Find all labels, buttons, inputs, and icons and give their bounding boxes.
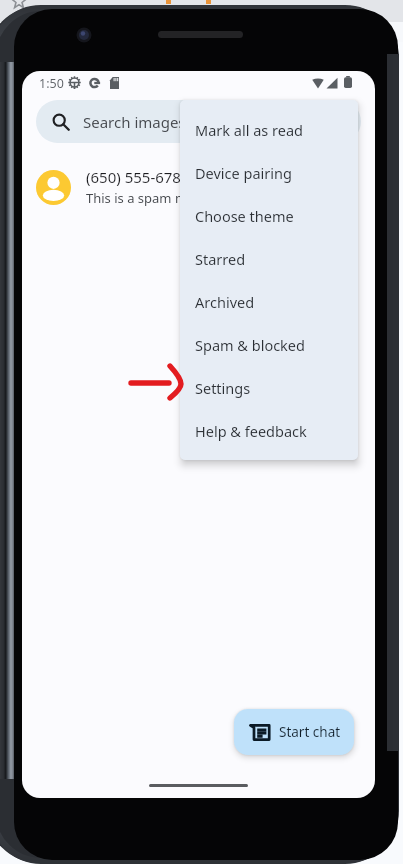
staticText: Archived	[195, 292, 255, 312]
staticText: Start chat	[279, 723, 341, 741]
staticText: Spam & blocked	[195, 335, 305, 355]
button[interactable]: Archived	[180, 280, 358, 323]
staticText: (650) 555-6789	[86, 167, 190, 187]
staticText: Search images	[83, 112, 186, 132]
staticText: This is a spam message	[86, 189, 230, 207]
button[interactable]: Search images	[36, 100, 361, 143]
button[interactable]: Device pairing	[180, 151, 358, 194]
button[interactable]: Settings	[180, 366, 358, 409]
button[interactable]: (650) 555-6789	[22, 160, 375, 214]
button[interactable]: Starred	[180, 237, 358, 280]
staticText: 1:50	[39, 75, 64, 92]
staticText: Mark all as read	[195, 120, 303, 140]
staticText: Choose theme	[195, 206, 294, 226]
button[interactable]: Choose theme	[180, 194, 358, 237]
staticText: Settings	[195, 378, 251, 398]
button[interactable]: Spam & blocked	[180, 323, 358, 366]
button[interactable]: Help & feedback	[180, 409, 358, 452]
staticText: Device pairing	[195, 163, 292, 183]
button[interactable]: Mark all as read	[180, 108, 358, 151]
staticText: Help & feedback	[195, 421, 307, 441]
button[interactable]: Start chat	[234, 709, 354, 755]
staticText: Starred	[195, 249, 246, 269]
